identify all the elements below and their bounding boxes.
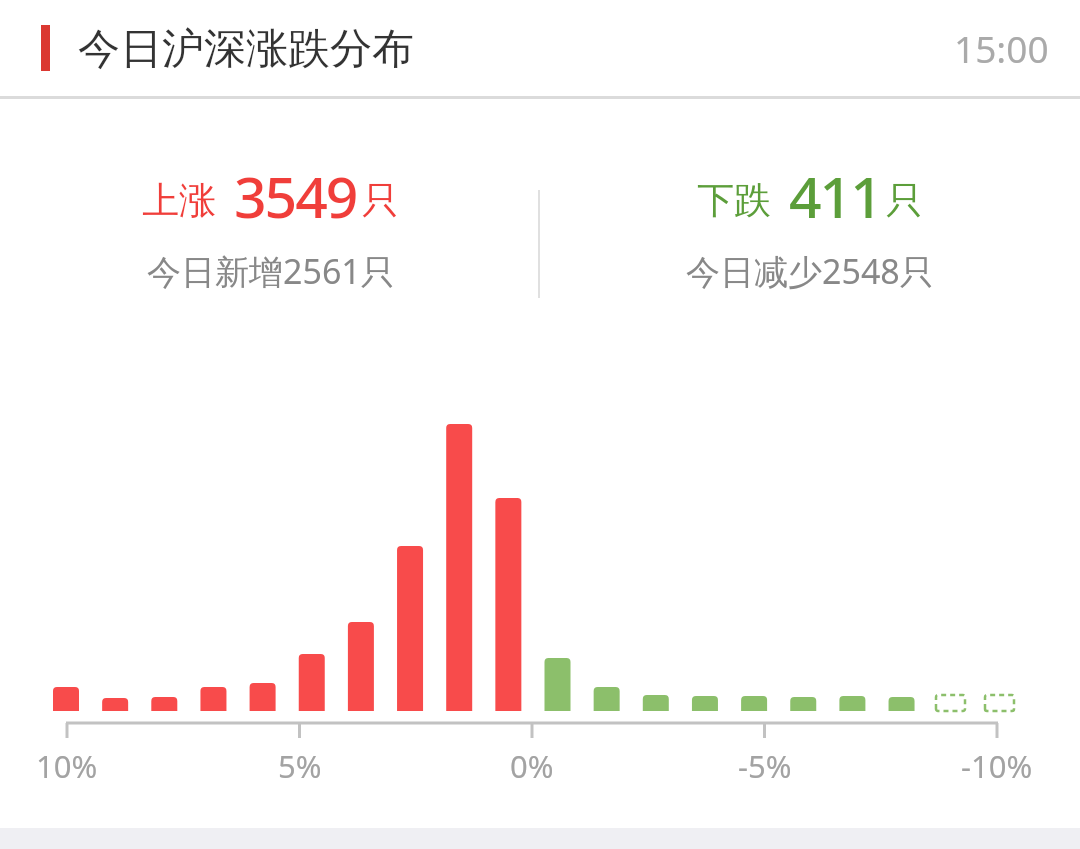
staticText: 只 (886, 177, 923, 224)
staticText: 今日沪深涨跌分布 (78, 23, 414, 76)
staticText: -5% (738, 745, 792, 787)
staticText: 3549 (234, 157, 357, 235)
staticText: 今日减少2548只 (686, 248, 934, 294)
staticText: 上涨 (142, 177, 216, 224)
staticText: 下跌 (697, 177, 771, 224)
staticText: 15:00 (954, 23, 1049, 73)
staticText: 411 (789, 157, 881, 235)
staticText: 5% (278, 745, 322, 787)
staticText: 0% (510, 745, 554, 787)
staticText: 只 (362, 177, 399, 224)
staticText: 今日新增2561只 (147, 248, 395, 294)
button[interactable]: 今日沪深涨跌分布 (0, 0, 1080, 96)
staticText: 10% (36, 745, 98, 787)
staticText: -10% (961, 745, 1033, 787)
